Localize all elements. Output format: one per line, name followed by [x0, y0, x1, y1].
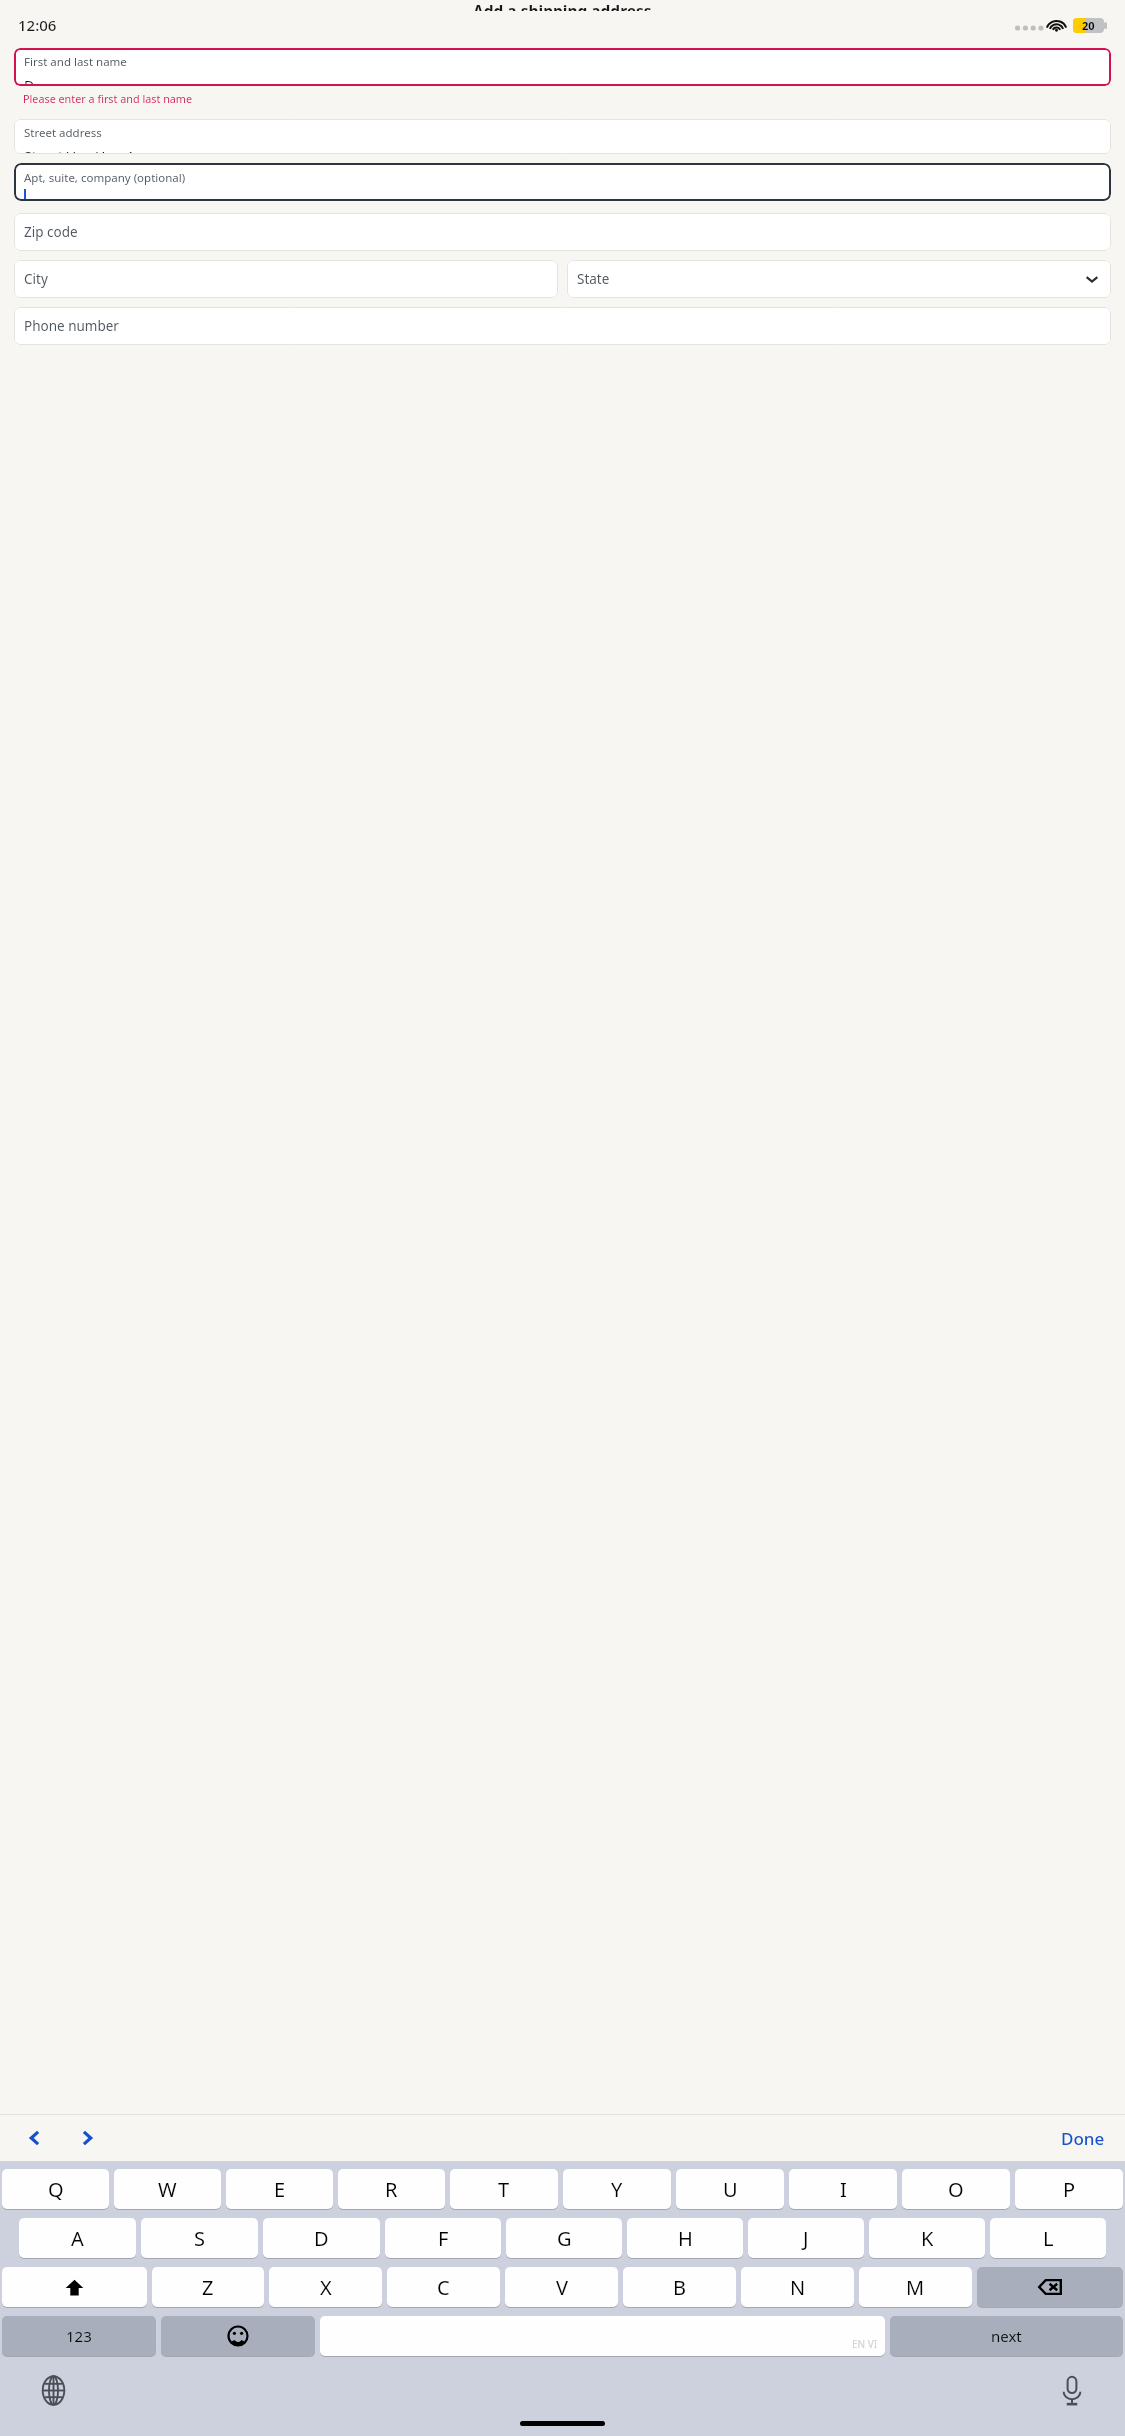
button[interactable]: Street address: [14, 119, 1111, 154]
staticText: M: [906, 2274, 925, 2301]
button[interactable]: F: [385, 2218, 501, 2258]
staticText: B: [673, 2274, 686, 2301]
button[interactable]: Next field: [66, 2117, 108, 2159]
button[interactable]: Apt, suite, company (optional): [14, 163, 1111, 201]
staticText: K: [921, 2225, 934, 2252]
staticText: J: [803, 2225, 809, 2252]
button[interactable]: First and last name: [14, 48, 1111, 86]
button[interactable]: E: [226, 2169, 333, 2209]
staticText: Street address: [24, 125, 102, 141]
button[interactable]: M: [859, 2267, 972, 2307]
button[interactable]: 123: [2, 2316, 156, 2356]
button[interactable]: R: [338, 2169, 445, 2209]
button[interactable]: Emoji: [161, 2316, 315, 2356]
staticText: T: [498, 2176, 510, 2203]
staticText: A: [71, 2225, 84, 2252]
staticText: State: [577, 270, 610, 288]
button[interactable]: W: [114, 2169, 221, 2209]
staticText: U: [723, 2176, 738, 2203]
button[interactable]: G: [506, 2218, 622, 2258]
staticText: C: [437, 2274, 450, 2301]
button[interactable]: Backspace: [977, 2267, 1123, 2307]
button[interactable]: P: [1015, 2169, 1123, 2209]
staticText: Street Van Hoa 4: [24, 147, 134, 154]
staticText: F: [438, 2225, 449, 2252]
button[interactable]: A: [19, 2218, 136, 2258]
staticText: Y: [611, 2176, 623, 2203]
staticText: Done: [1061, 2127, 1105, 2150]
staticText: P: [1063, 2176, 1076, 2203]
staticText: next: [991, 2326, 1022, 2346]
button[interactable]: U: [676, 2169, 784, 2209]
button[interactable]: T: [450, 2169, 558, 2209]
staticText: EN VI: [852, 2337, 878, 2351]
staticText: 12:06: [18, 15, 57, 35]
button[interactable]: Phone number: [14, 307, 1111, 345]
button[interactable]: B: [623, 2267, 736, 2307]
button[interactable]: City: [14, 260, 558, 298]
button[interactable]: S: [141, 2218, 258, 2258]
button[interactable]: Zip code: [14, 213, 1111, 251]
button[interactable]: Voice input: [1049, 2367, 1095, 2413]
staticText: Please enter a first and last name: [23, 91, 193, 106]
button[interactable]: next: [890, 2316, 1123, 2356]
staticText: I: [840, 2176, 847, 2203]
staticText: Add a shipping address: [473, 0, 652, 11]
staticText: Apt, suite, company (optional): [24, 170, 186, 186]
staticText: E: [274, 2176, 286, 2203]
staticText: O: [948, 2176, 964, 2203]
button[interactable]: Z: [152, 2267, 264, 2307]
button[interactable]: V: [505, 2267, 618, 2307]
button[interactable]: N: [741, 2267, 854, 2307]
button[interactable]: Done: [1055, 2121, 1111, 2156]
staticText: Z: [202, 2274, 214, 2301]
button[interactable]: X: [269, 2267, 382, 2307]
button[interactable]: C: [387, 2267, 500, 2307]
staticText: Phone number: [24, 317, 119, 335]
button[interactable]: O: [902, 2169, 1010, 2209]
button[interactable]: Y: [563, 2169, 671, 2209]
staticText: L: [1043, 2225, 1054, 2252]
button[interactable]: Q: [2, 2169, 109, 2209]
staticText: Zip code: [24, 223, 78, 241]
button[interactable]: J: [748, 2218, 864, 2258]
button[interactable]: K: [869, 2218, 985, 2258]
staticText: 20: [1082, 18, 1095, 33]
staticText: H: [678, 2225, 693, 2252]
button[interactable]: D: [263, 2218, 380, 2258]
staticText: Q: [48, 2176, 64, 2203]
button[interactable]: I: [789, 2169, 897, 2209]
button[interactable]: State: [567, 260, 1111, 298]
staticText: First and last name: [24, 54, 127, 70]
staticText: D: [314, 2225, 329, 2252]
staticText: G: [557, 2225, 572, 2252]
staticText: V: [556, 2274, 568, 2301]
staticText: R: [385, 2176, 398, 2203]
button[interactable]: Change keyboard language: [30, 2367, 76, 2413]
button[interactable]: L: [990, 2218, 1106, 2258]
staticText: D: [24, 76, 35, 86]
staticText: City: [24, 270, 48, 288]
staticText: W: [158, 2176, 177, 2203]
staticText: 123: [66, 2326, 92, 2346]
staticText: N: [790, 2274, 806, 2301]
button[interactable]: H: [627, 2218, 743, 2258]
staticText: X: [320, 2274, 332, 2301]
button[interactable]: Previous field: [14, 2117, 56, 2159]
button[interactable]: Shift: [2, 2267, 147, 2307]
staticText: S: [194, 2225, 205, 2252]
